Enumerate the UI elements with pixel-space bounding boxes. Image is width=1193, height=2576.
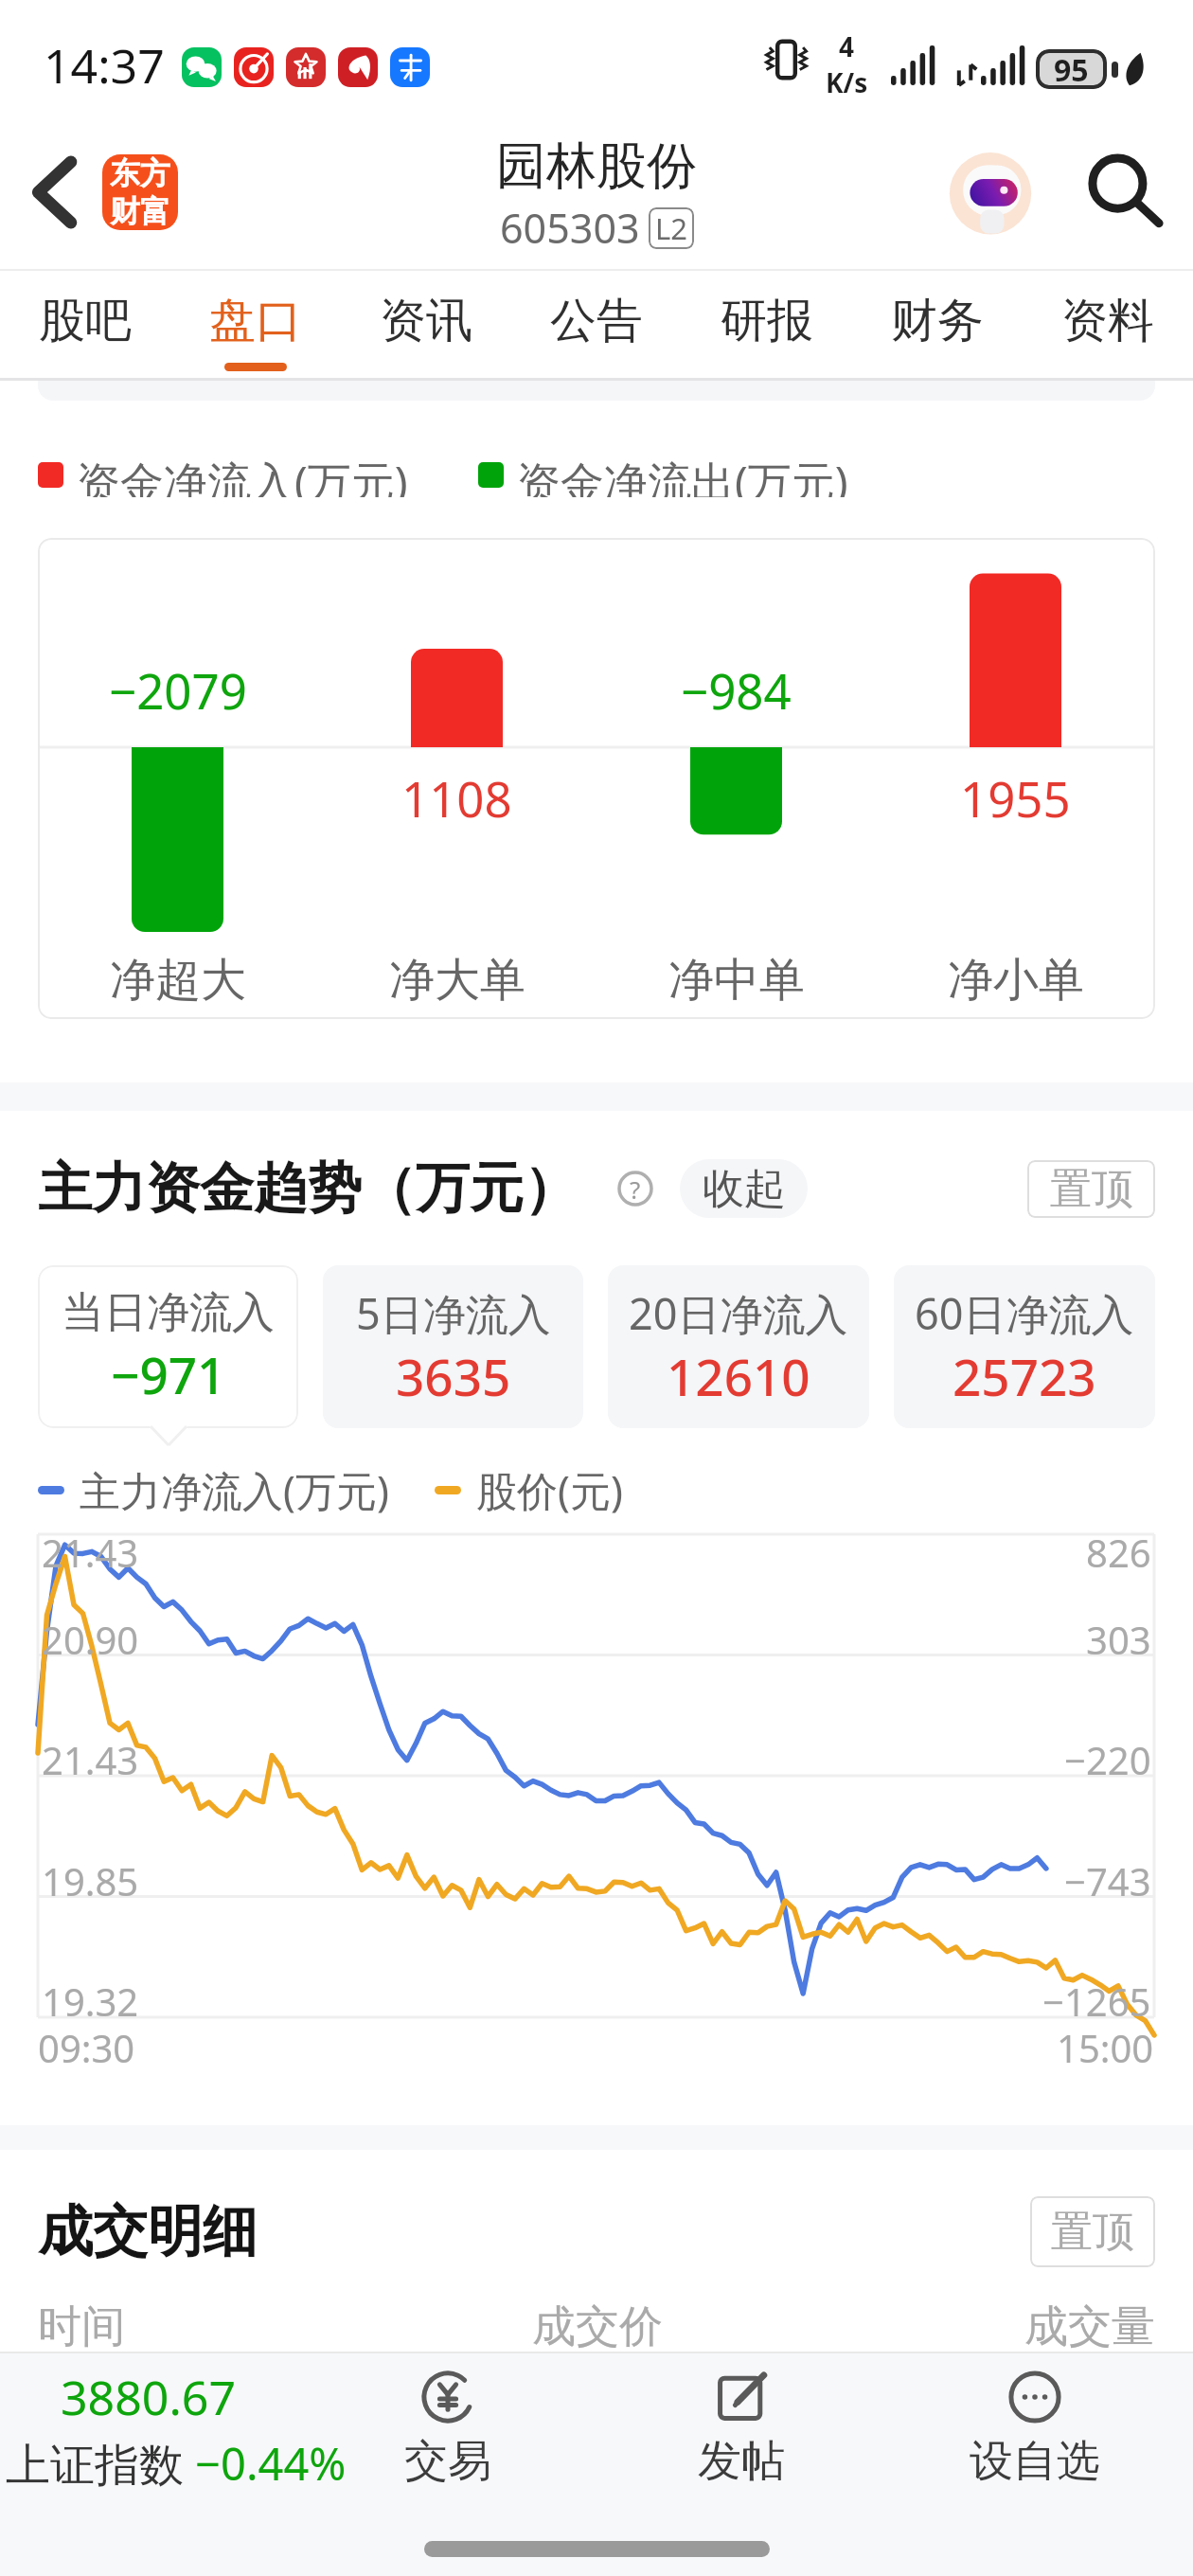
staticText: 上证指数 −0.44% — [6, 2433, 347, 2494]
staticText: 收起 — [703, 1163, 786, 1215]
staticText: 主力资金趋势（万元） — [38, 1154, 578, 1223]
staticText: 资讯 — [380, 292, 472, 350]
staticText: 盘口 — [209, 292, 302, 350]
button[interactable]: Eastmoney logo — [102, 154, 178, 230]
staticText: 826 — [1086, 1527, 1151, 1578]
button[interactable]: 60日净流入 — [894, 1265, 1155, 1428]
staticText: 成交明细 — [38, 2197, 258, 2266]
staticText: 14:37 — [44, 33, 165, 98]
staticText: 东方 — [110, 154, 170, 192]
staticText: 成交量 — [1024, 2299, 1155, 2354]
staticText: 置顶 — [1051, 2206, 1134, 2258]
staticText: 当日净流入 — [62, 1286, 275, 1340]
staticText: 605303 — [500, 200, 640, 256]
button[interactable]: 20日净流入 — [608, 1265, 869, 1428]
button[interactable]: Help — [617, 1171, 653, 1207]
staticText: 21.43 — [42, 1734, 139, 1785]
button[interactable]: −2079 — [38, 538, 1155, 1019]
button[interactable]: 收起 — [680, 1159, 808, 1218]
button[interactable]: AI assistant — [948, 153, 1033, 239]
button[interactable]: 财务 — [852, 271, 1023, 379]
staticText: 1108 — [401, 765, 512, 831]
staticText: K/s — [826, 64, 868, 100]
staticText: 净小单 — [948, 952, 1084, 1009]
button[interactable]: Back — [0, 114, 110, 271]
button[interactable]: 当日净流入 — [38, 1265, 298, 1428]
staticText: 主力净流入(万元) — [80, 1462, 389, 1518]
button[interactable]: 3880.67 — [6, 2365, 347, 2494]
staticText: 15:00 — [1057, 2022, 1154, 2073]
staticText: −984 — [681, 657, 792, 723]
button[interactable]: 交易 — [301, 2352, 595, 2503]
button[interactable]: 盘口 — [170, 271, 341, 379]
staticText: 股吧 — [39, 292, 132, 350]
button[interactable]: 5日净流入 — [323, 1265, 583, 1428]
staticText: 公告 — [550, 292, 643, 350]
staticText: 12610 — [667, 1342, 810, 1410]
staticText: 20.90 — [42, 1614, 139, 1665]
staticText: 3635 — [396, 1342, 511, 1410]
staticText: 园林股份 — [496, 134, 697, 198]
staticText: 95 — [1054, 49, 1089, 89]
button[interactable]: 资料 — [1023, 271, 1193, 379]
staticText: −971 — [111, 1340, 226, 1408]
staticText: 1955 — [960, 765, 1071, 831]
button[interactable]: 股吧 — [0, 271, 170, 379]
staticText: 时间 — [38, 2299, 125, 2354]
staticText: L2 — [655, 208, 687, 248]
button[interactable]: 置顶 — [1027, 1160, 1155, 1218]
staticText: 交易 — [404, 2434, 491, 2489]
button[interactable]: 置顶 — [1030, 2196, 1155, 2267]
button[interactable]: 公告 — [511, 271, 682, 379]
staticText: −1265 — [1042, 1976, 1151, 2027]
staticText: 净大单 — [389, 952, 525, 1009]
staticText: −2079 — [109, 657, 247, 723]
staticText: −743 — [1064, 1855, 1151, 1906]
staticText: 发帖 — [698, 2434, 785, 2489]
button[interactable]: Search — [1072, 114, 1180, 271]
staticText: 净中单 — [668, 952, 805, 1009]
staticText: 21.43 — [42, 1527, 139, 1578]
staticText: 25723 — [953, 1342, 1096, 1410]
staticText: 20日净流入 — [629, 1284, 848, 1342]
button[interactable]: 发帖 — [595, 2352, 888, 2503]
staticText: 置顶 — [1050, 1163, 1133, 1215]
staticText: 成交价 — [532, 2299, 663, 2354]
staticText: 60日净流入 — [915, 1284, 1134, 1342]
button[interactable]: 设自选 — [888, 2352, 1182, 2503]
staticText: 财富 — [110, 192, 170, 230]
staticText: 资料 — [1061, 292, 1154, 350]
staticText: 财务 — [891, 292, 984, 350]
staticText: 资金净流出(万元) — [517, 452, 848, 497]
staticText: 设自选 — [970, 2434, 1100, 2489]
staticText: 19.32 — [42, 1976, 139, 2027]
staticText: 19.85 — [42, 1855, 139, 1906]
button[interactable]: 研报 — [682, 271, 852, 379]
staticText: 5日净流入 — [356, 1284, 551, 1342]
staticText: 09:30 — [38, 2022, 135, 2073]
staticText: 3880.67 — [61, 2365, 236, 2429]
staticText: 股价(元) — [476, 1462, 623, 1518]
staticText: 研报 — [721, 292, 813, 350]
staticText: 净超大 — [110, 952, 246, 1009]
staticText: 303 — [1086, 1614, 1151, 1665]
button[interactable]: 资讯 — [341, 271, 511, 379]
staticText: −220 — [1064, 1734, 1151, 1785]
staticText: 4 — [839, 28, 855, 64]
staticText: 资金净流入(万元) — [77, 452, 408, 497]
staticText: ? — [630, 1172, 641, 1206]
